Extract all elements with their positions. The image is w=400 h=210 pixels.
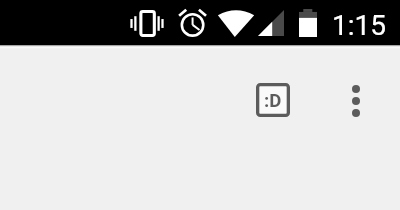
- button[interactable]: More options: [334, 79, 378, 123]
- staticText: 1:15: [332, 9, 386, 42]
- button[interactable]: Emoticon: [248, 76, 298, 124]
- staticText: :D: [264, 90, 282, 112]
